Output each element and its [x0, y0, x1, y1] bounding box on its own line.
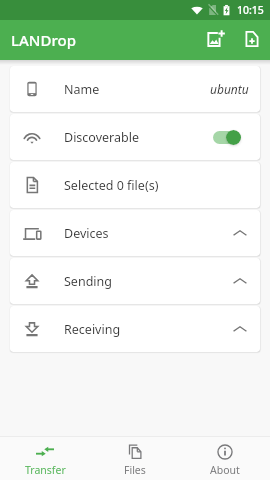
button[interactable]: Transfer [0, 437, 90, 480]
staticText: Name [64, 81, 100, 98]
staticText: Devices [64, 225, 109, 242]
staticText: Files [124, 463, 146, 477]
button[interactable]: Name [10, 66, 260, 112]
button[interactable]: Add file [234, 21, 270, 57]
staticText: 10:15 [237, 3, 264, 17]
button[interactable]: Devices [10, 210, 260, 256]
button[interactable]: Receiving [10, 306, 260, 352]
button[interactable]: Selected 0 file(s) [10, 162, 260, 208]
button[interactable]: Files [90, 437, 180, 480]
staticText: Selected 0 file(s) [64, 177, 159, 194]
staticText: Receiving [64, 321, 121, 338]
staticText: About [210, 463, 240, 477]
staticText: LANDrop [11, 30, 76, 50]
staticText: Sending [64, 273, 112, 290]
staticText: ubuntu [210, 81, 249, 97]
staticText: Discoverable [64, 129, 139, 146]
button[interactable]: About [180, 437, 270, 480]
staticText: Transfer [25, 463, 66, 477]
button[interactable]: Add image [196, 20, 234, 57]
button[interactable]: Discoverable [10, 114, 260, 160]
button[interactable]: Sending [10, 258, 260, 304]
